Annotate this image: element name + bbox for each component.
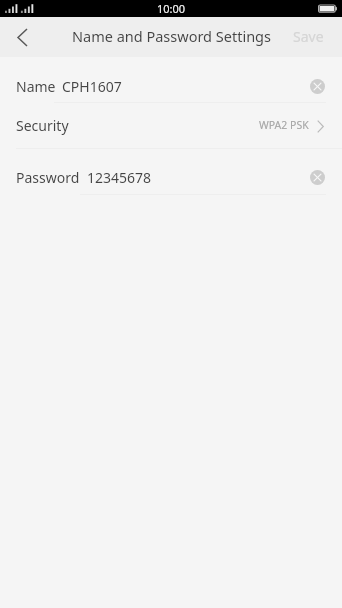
staticText: Security — [16, 116, 69, 135]
staticText: 10:00 — [157, 1, 186, 16]
button[interactable]: Name — [0, 60, 342, 102]
staticText: Save — [293, 27, 324, 46]
staticText: 12345678 — [87, 168, 152, 187]
button[interactable]: Password — [0, 152, 342, 194]
button[interactable]: Save — [293, 27, 324, 46]
button[interactable]: Back — [0, 17, 42, 57]
staticText: Name and Password Settings — [72, 26, 271, 46]
staticText: WPA2 PSK — [259, 118, 309, 132]
staticText: Password — [16, 168, 80, 187]
button[interactable]: Clear — [310, 170, 325, 185]
button[interactable]: Clear — [310, 79, 325, 94]
button[interactable]: Security — [0, 103, 342, 148]
staticText: CPH1607 — [62, 77, 122, 96]
staticText: Name — [16, 77, 56, 96]
